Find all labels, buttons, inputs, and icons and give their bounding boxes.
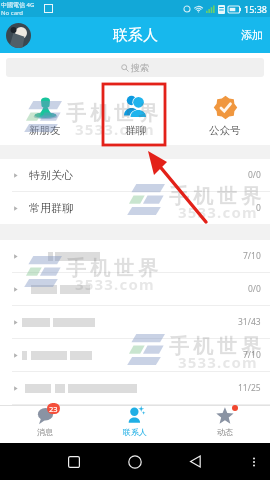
staticText: 0 [256, 202, 261, 214]
staticText: 11/25 [238, 382, 261, 394]
staticText: 手机世界 [64, 101, 160, 126]
button[interactable]: Profile avatar [6, 23, 31, 48]
button[interactable]: 11/25 [0, 372, 270, 404]
button[interactable]: 常用群聊 [0, 192, 270, 224]
button[interactable]: 31/43 [0, 306, 270, 338]
button[interactable]: 0/0 [0, 273, 270, 305]
staticText: 常用群聊 [29, 201, 73, 215]
staticText: 0/0 [248, 169, 261, 181]
button[interactable]: Back [189, 455, 202, 468]
button[interactable]: 搜索 [6, 58, 264, 77]
staticText: 中國電信 4G [1, 1, 35, 9]
staticText: 联系人 [113, 26, 158, 45]
staticText: 新朋友 [29, 124, 61, 137]
staticText: 3533.com [75, 274, 155, 294]
staticText: 7/10 [243, 349, 261, 361]
staticText: 3533.com [178, 352, 258, 372]
button[interactable]: Recent apps [68, 456, 80, 468]
staticText: 0/0 [248, 283, 261, 295]
button[interactable]: Home [128, 455, 142, 469]
staticText: 3533.com [178, 202, 258, 222]
button[interactable]: 添加 [235, 23, 270, 47]
staticText: 特别关心 [29, 168, 73, 182]
button[interactable]: 新朋友 [0, 81, 90, 137]
button[interactable]: 群聊 [90, 81, 180, 137]
button[interactable]: 7/10 [0, 240, 270, 272]
staticText: 群聊 [125, 124, 146, 137]
button[interactable]: 联系人 [90, 406, 180, 437]
button[interactable]: 动态 [180, 406, 270, 437]
staticText: 动态 [217, 427, 233, 437]
staticText: 消息 [37, 427, 53, 437]
staticText: 搜索 [131, 62, 149, 73]
staticText: 23 [49, 404, 58, 414]
button[interactable]: More options [249, 457, 259, 467]
staticText: 手机世界 [167, 334, 263, 359]
staticText: 31/43 [238, 316, 261, 328]
button[interactable]: 7/10 [0, 339, 270, 371]
staticText: No card [1, 9, 24, 17]
button[interactable]: 公众号 [180, 81, 270, 137]
staticText: 联系人 [123, 427, 147, 437]
staticText: 公众号 [209, 124, 241, 137]
staticText: 手机世界 [64, 256, 160, 281]
staticText: 15:38 [244, 3, 268, 15]
staticText: 手机世界 [167, 184, 263, 209]
staticText: 3533.com [75, 119, 155, 139]
button[interactable]: 23 [0, 406, 90, 437]
staticText: 7/10 [243, 250, 261, 262]
button[interactable]: 特别关心 [0, 159, 270, 191]
